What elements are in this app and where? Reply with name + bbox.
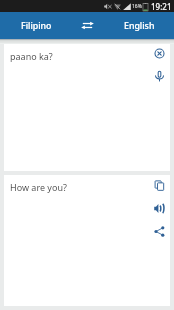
button[interactable]: English	[102, 12, 174, 39]
button[interactable]: Copy translation	[149, 174, 169, 197]
button[interactable]: Share	[149, 220, 169, 243]
staticText: English	[124, 20, 155, 32]
staticText: Filipino	[21, 20, 52, 32]
button[interactable]: Filipino	[0, 12, 72, 39]
button[interactable]: Listen	[149, 197, 169, 220]
staticText: 16%	[132, 3, 142, 10]
staticText: paano ka?	[10, 50, 53, 62]
staticText: 19:21	[151, 1, 172, 12]
staticText: How are you?	[10, 181, 67, 193]
button[interactable]: Voice input	[149, 65, 169, 88]
button[interactable]: Swap languages	[72, 12, 102, 39]
button[interactable]: Clear text	[149, 42, 169, 65]
